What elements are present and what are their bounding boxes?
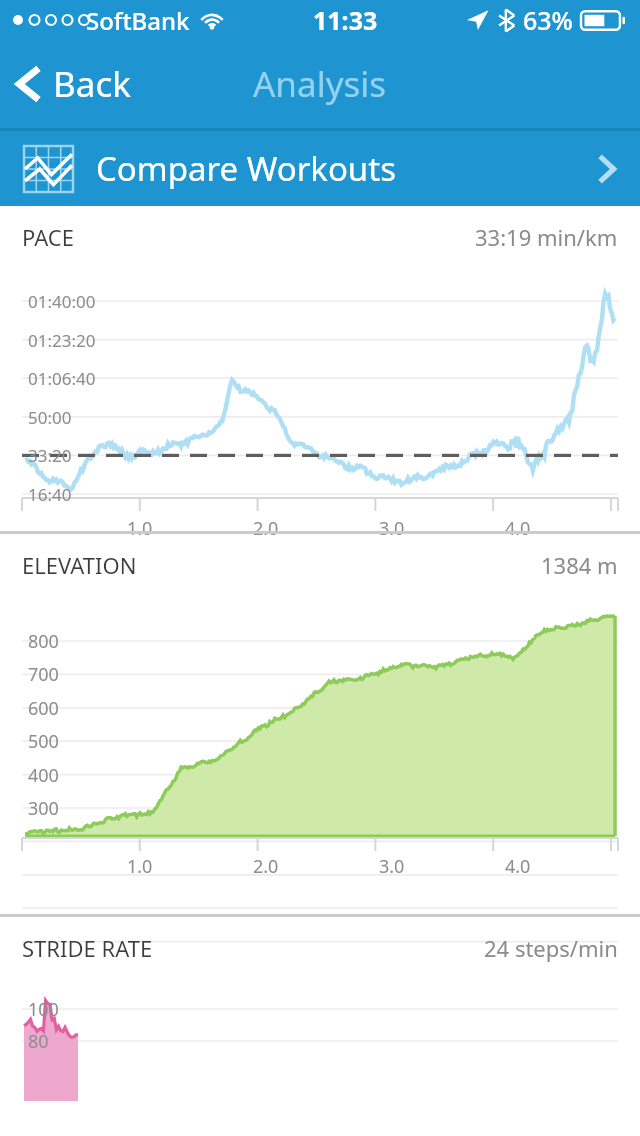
staticText: 300 [28,796,59,821]
staticText: 4.0 [505,516,531,541]
staticText: 500 [28,729,59,754]
staticText: 63% [523,3,573,37]
staticText: Analysis [253,60,387,108]
staticText: 1.0 [127,516,153,541]
staticText: Back [53,60,131,108]
staticText: ELEVATION [22,550,137,580]
staticText: 400 [28,763,59,788]
staticText: 800 [28,629,59,654]
staticText: 600 [28,696,59,721]
staticText: 2.0 [253,854,279,879]
staticText: 16:40 [28,483,72,506]
staticText: 11:33 [313,3,378,37]
staticText: STRIDE RATE [22,933,153,963]
staticText: 33:19 min/km [475,222,618,252]
staticText: 700 [28,662,59,687]
staticText: 100 [28,997,59,1022]
staticText: 3.0 [379,516,405,541]
staticText: 3.0 [379,854,405,879]
staticText: 80 [28,1029,49,1054]
staticText: 33:20 [28,444,72,467]
staticText: 1.0 [127,854,153,879]
staticText: 2.0 [253,516,279,541]
staticText: PACE [22,222,74,252]
button[interactable]: Compare Workouts [0,131,640,206]
button[interactable]: Back [0,50,149,118]
staticText: 50:00 [28,406,72,429]
staticText: 01:40:00 [28,290,96,313]
staticText: 01:06:40 [28,367,96,390]
staticText: 01:23:20 [28,329,96,352]
staticText: 24 steps/min [484,933,618,963]
staticText: 1384 m [541,550,618,580]
staticText: Compare Workouts [96,146,396,191]
other: Compare Workouts [597,152,616,186]
staticText: 4.0 [505,854,531,879]
staticText: SoftBank [86,4,190,37]
